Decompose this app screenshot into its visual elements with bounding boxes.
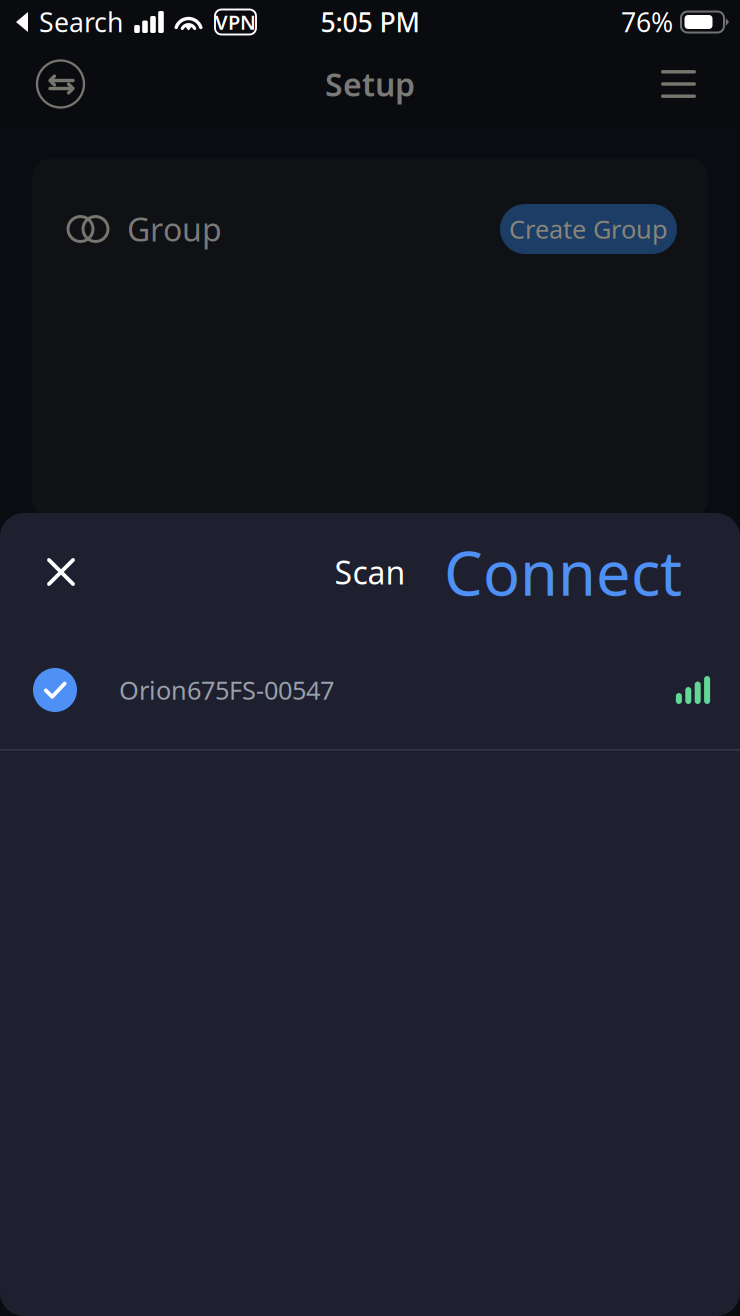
staticText: VPN xyxy=(215,9,256,35)
staticText: Group xyxy=(127,208,222,250)
button[interactable]: Menu xyxy=(645,46,740,122)
button[interactable]: Connect xyxy=(424,523,740,621)
staticText: Scan xyxy=(334,551,405,593)
staticText: Connect xyxy=(444,531,682,613)
staticText: Orion675FS-00547 xyxy=(119,673,334,707)
button[interactable]: Close xyxy=(0,540,93,604)
button[interactable]: Create Group xyxy=(500,204,677,254)
staticText: Search xyxy=(39,4,123,40)
staticText: 5:05 PM xyxy=(320,4,419,40)
staticText: Setup xyxy=(325,63,415,105)
button[interactable]: Transfer xyxy=(0,44,100,123)
staticText: Create Group xyxy=(509,212,668,246)
staticText: 76% xyxy=(621,4,673,40)
